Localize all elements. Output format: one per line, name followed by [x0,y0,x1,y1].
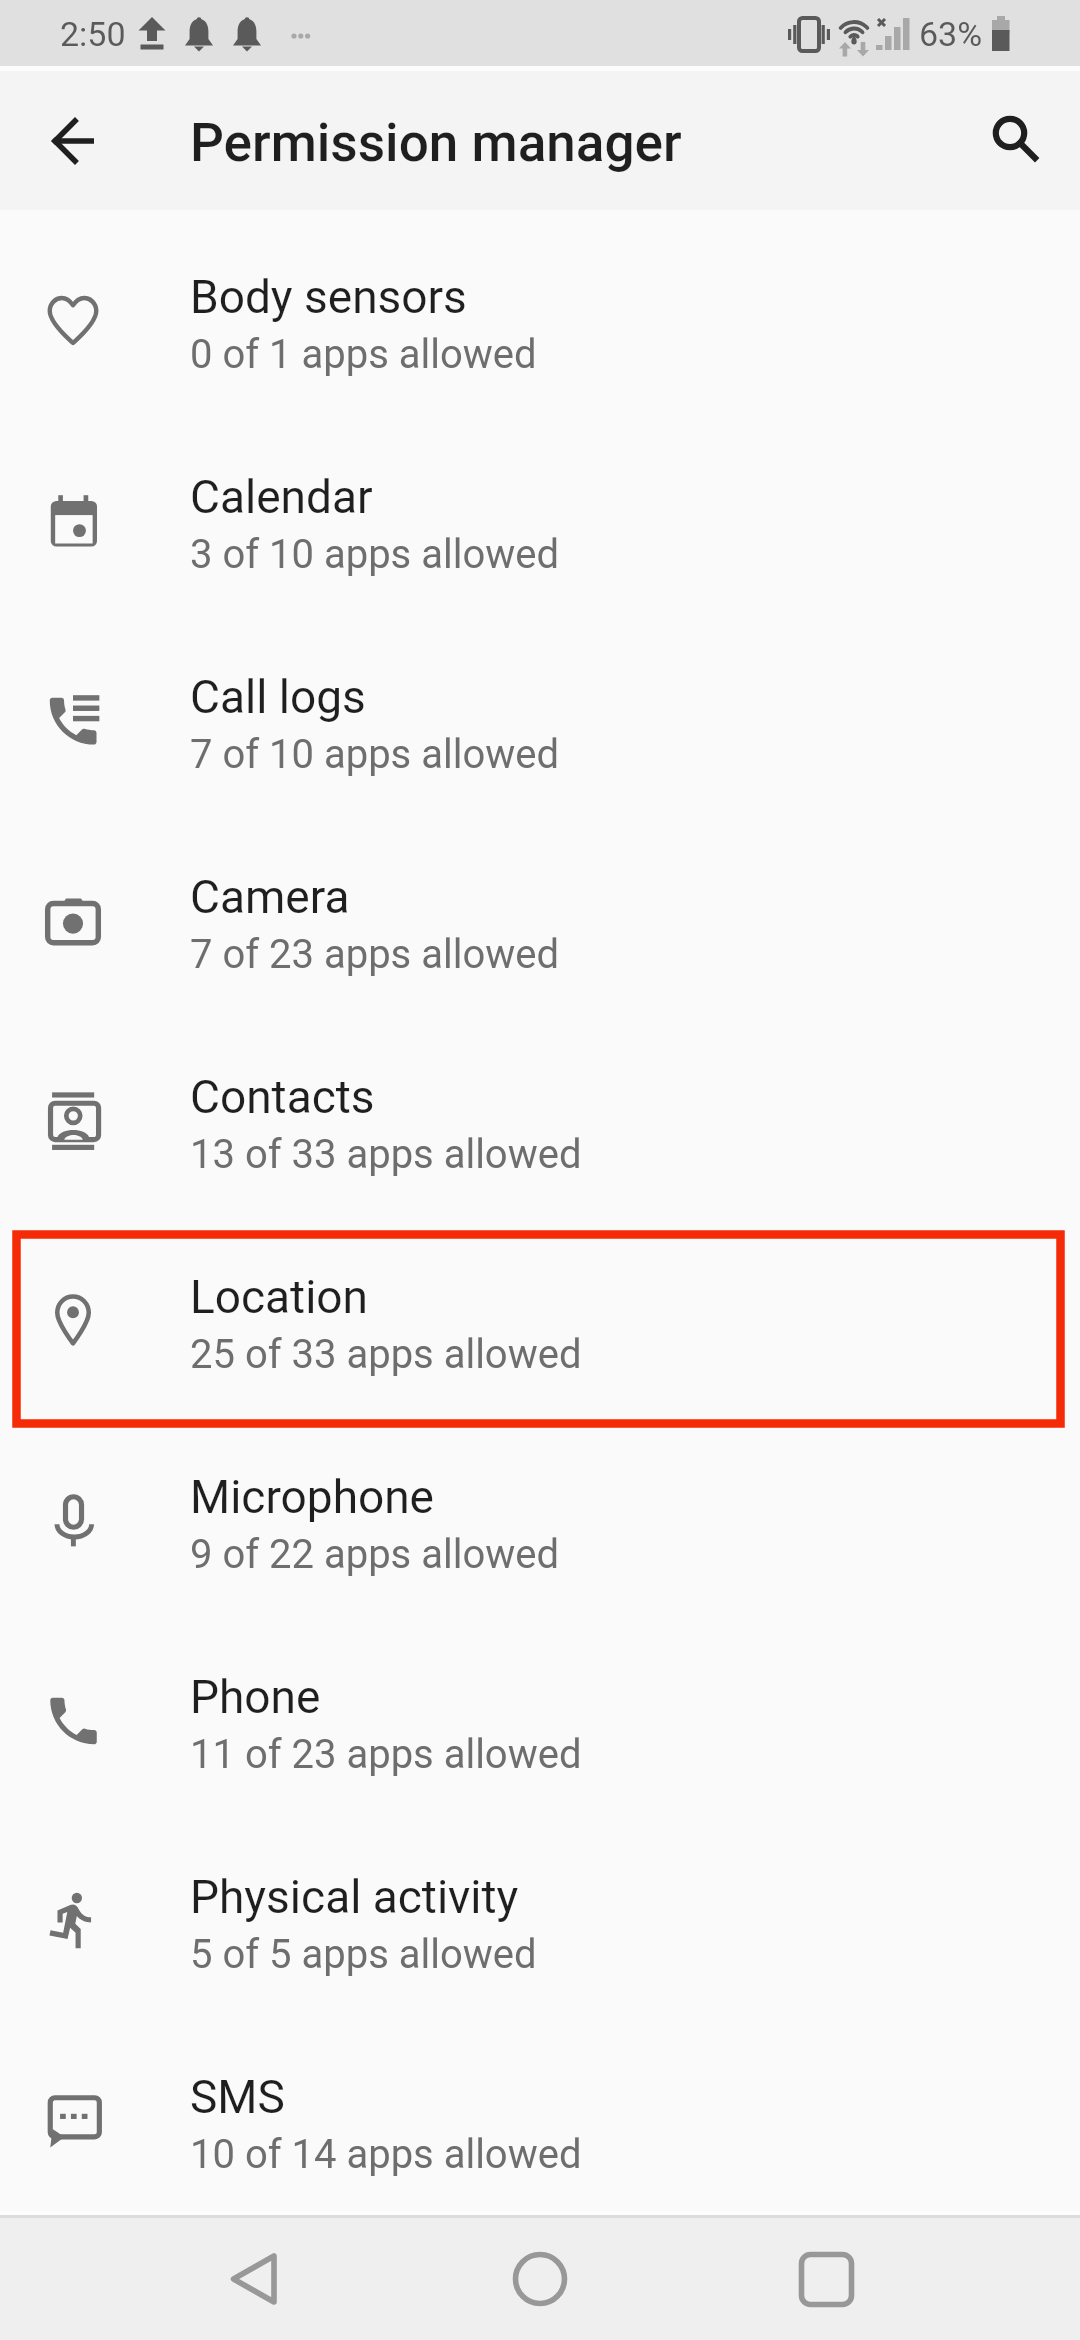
button[interactable]: Calendar [0,410,1080,610]
button[interactable]: Contacts [0,1010,1080,1210]
staticText: 25 of 33 apps allowed [190,1331,582,1378]
staticText: Call logs [190,670,366,724]
button[interactable]: Body sensors [0,210,1080,410]
staticText: 11 of 23 apps allowed [190,1731,582,1778]
staticText: Phone [190,1670,321,1724]
staticText: SMS [190,2070,285,2124]
staticText: 7 of 23 apps allowed [190,931,560,978]
staticText: 0 of 1 apps allowed [190,331,537,378]
staticText: 5 of 5 apps allowed [190,1931,537,1978]
staticText: Permission manager [190,112,682,174]
button[interactable]: Microphone [0,1410,1080,1610]
staticText: 10 of 14 apps allowed [190,2131,582,2178]
staticText: 7 of 10 apps allowed [190,731,560,778]
staticText: 3 of 10 apps allowed [190,531,560,578]
staticText: Microphone [190,1470,434,1524]
button[interactable]: Navigate up [25,93,121,189]
button[interactable]: Camera [0,810,1080,1010]
button[interactable]: Home [460,2217,620,2340]
staticText: Calendar [190,470,373,524]
staticText: 13 of 33 apps allowed [190,1131,582,1178]
button[interactable]: Search [962,93,1058,189]
staticText: Body sensors [190,270,467,324]
staticText: 63% [919,14,983,54]
button[interactable]: Location [0,1210,1080,1410]
button[interactable]: Back [180,2217,340,2340]
staticText: 2:50 [60,14,126,54]
button[interactable]: Physical activity [0,1810,1080,2010]
staticText: Contacts [190,1070,375,1124]
button[interactable]: Phone [0,1610,1080,1810]
button[interactable]: Recent apps [746,2217,906,2340]
button[interactable]: Call logs [0,610,1080,810]
staticText: Location [190,1270,368,1324]
button[interactable]: SMS [0,2010,1080,2210]
staticText: Camera [190,870,350,924]
staticText: Physical activity [190,1870,519,1924]
staticText: 9 of 22 apps allowed [190,1531,560,1578]
